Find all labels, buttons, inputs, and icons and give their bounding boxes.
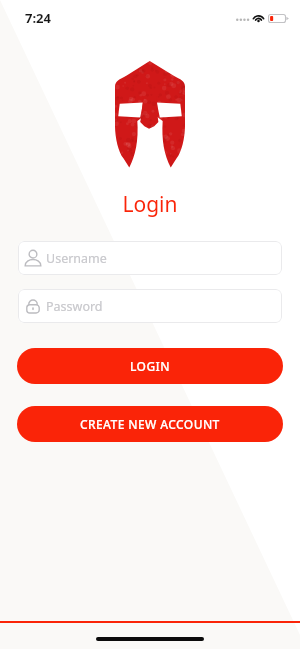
staticText: LOGIN (130, 358, 170, 374)
staticText: Username (46, 250, 107, 267)
staticText: CREATE NEW ACCOUNT (80, 416, 220, 432)
button[interactable]: Username (18, 241, 282, 275)
button[interactable]: CREATE NEW ACCOUNT (17, 406, 283, 442)
button[interactable]: LOGIN (17, 348, 283, 384)
staticText: 7:24 (25, 9, 51, 27)
staticText: Password (46, 298, 103, 315)
button[interactable]: Password (18, 289, 282, 323)
staticText: Login (122, 190, 178, 219)
